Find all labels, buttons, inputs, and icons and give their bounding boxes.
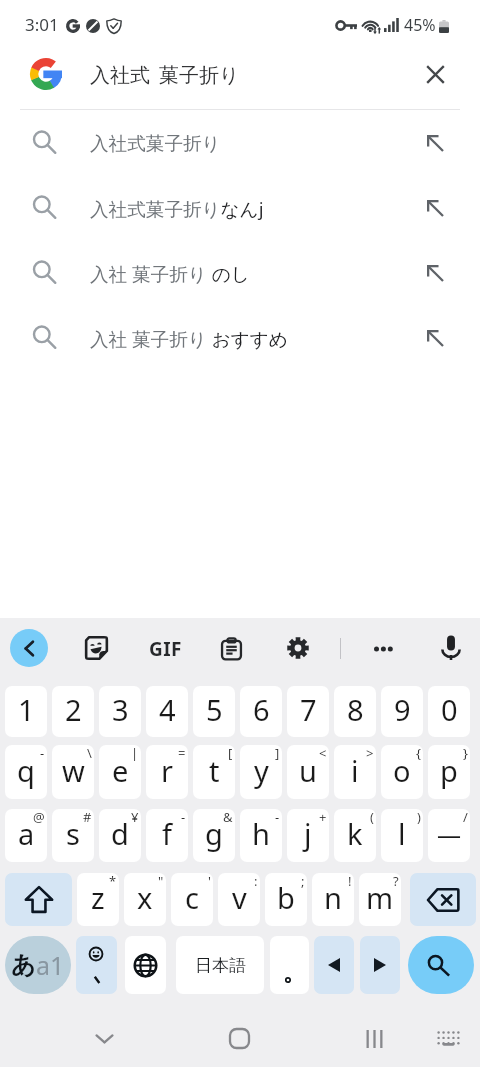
staticText: 45% bbox=[404, 14, 436, 36]
button[interactable]: GIF bbox=[149, 636, 182, 662]
button[interactable]: d bbox=[99, 809, 141, 862]
staticText: > bbox=[366, 745, 374, 762]
button[interactable]: Insert suggestion bbox=[413, 251, 457, 295]
button[interactable]: Back bbox=[10, 629, 48, 667]
staticText: w bbox=[62, 751, 85, 790]
button[interactable]: 6 bbox=[240, 686, 282, 737]
button[interactable]: u bbox=[287, 745, 329, 799]
staticText: — bbox=[437, 817, 461, 850]
button[interactable]: g bbox=[193, 809, 235, 862]
staticText: 1 bbox=[18, 690, 35, 729]
button[interactable]: Insert suggestion bbox=[413, 316, 457, 360]
button[interactable]: Shift bbox=[5, 873, 72, 926]
button[interactable]: Insert suggestion bbox=[413, 186, 457, 230]
button[interactable]: q bbox=[5, 745, 47, 799]
button[interactable]: あ bbox=[5, 936, 71, 994]
staticText: 7 bbox=[300, 690, 317, 729]
staticText: - bbox=[181, 809, 186, 826]
staticText: : bbox=[254, 873, 258, 890]
button[interactable]: Stickers bbox=[85, 636, 108, 660]
staticText: + bbox=[319, 809, 327, 826]
button[interactable]: 2 bbox=[52, 686, 94, 737]
staticText: 3:01 bbox=[25, 13, 59, 36]
button[interactable]: c bbox=[171, 873, 213, 926]
button[interactable]: Hide keyboard bbox=[84, 1018, 125, 1059]
staticText: - bbox=[275, 809, 280, 826]
button[interactable]: h bbox=[240, 809, 282, 862]
staticText: y bbox=[254, 751, 269, 790]
button[interactable]: w bbox=[52, 745, 94, 799]
button[interactable]: Clipboard bbox=[221, 638, 242, 660]
button[interactable]: j bbox=[287, 809, 329, 862]
button[interactable]: 9 bbox=[381, 686, 423, 737]
button[interactable]: 0 bbox=[428, 686, 470, 737]
button[interactable]: i bbox=[334, 745, 376, 799]
button[interactable]: 8 bbox=[334, 686, 376, 737]
staticText: あ bbox=[11, 950, 36, 980]
button[interactable]: Keyboard settings bbox=[287, 637, 309, 659]
button[interactable]: f bbox=[146, 809, 188, 862]
button[interactable]: 3 bbox=[99, 686, 141, 737]
staticText: " bbox=[158, 873, 164, 890]
button[interactable]: Switch keyboard bbox=[428, 1018, 469, 1059]
staticText: h bbox=[252, 814, 270, 853]
button[interactable]: 1 bbox=[5, 686, 47, 737]
button[interactable]: Voice input bbox=[442, 635, 460, 660]
button[interactable]: k bbox=[334, 809, 376, 862]
button[interactable]: Backspace bbox=[410, 873, 476, 926]
button[interactable]: l bbox=[381, 809, 423, 862]
button[interactable]: Change keyboard language bbox=[125, 936, 166, 994]
button[interactable]: e bbox=[99, 745, 141, 799]
staticText: ? bbox=[393, 873, 399, 890]
button[interactable]: Move cursor left bbox=[314, 936, 354, 994]
button[interactable]: y bbox=[240, 745, 282, 799]
button[interactable]: s bbox=[52, 809, 94, 862]
button[interactable] bbox=[270, 936, 309, 994]
button[interactable]: 7 bbox=[287, 686, 329, 737]
button[interactable]: Emoji bbox=[76, 936, 117, 994]
button[interactable]: p bbox=[428, 745, 470, 799]
button[interactable]: Home bbox=[219, 1018, 260, 1059]
staticText: ¥ bbox=[131, 809, 139, 826]
staticText: x bbox=[137, 878, 153, 917]
staticText: o bbox=[393, 751, 411, 790]
button[interactable]: m bbox=[359, 873, 401, 926]
button[interactable]: x bbox=[124, 873, 166, 926]
button[interactable]: z bbox=[77, 873, 119, 926]
button[interactable]: 入社式菓子折り bbox=[0, 110, 480, 175]
staticText: ( bbox=[370, 809, 374, 826]
staticText: n bbox=[324, 878, 342, 917]
staticText: u bbox=[299, 751, 317, 790]
button[interactable]: b bbox=[265, 873, 307, 926]
button[interactable]: 4 bbox=[146, 686, 188, 737]
button[interactable]: n bbox=[312, 873, 354, 926]
staticText: a bbox=[18, 814, 35, 853]
button[interactable]: r bbox=[146, 745, 188, 799]
button[interactable]: 日本語 bbox=[176, 936, 264, 994]
button[interactable]: Clear search bbox=[412, 54, 458, 100]
staticText: 入社式菓子折りなんj bbox=[90, 196, 264, 221]
button[interactable]: a bbox=[5, 809, 47, 862]
button[interactable]: Recent apps bbox=[354, 1018, 395, 1059]
button[interactable]: 入社式 bbox=[0, 45, 480, 109]
staticText: v bbox=[232, 878, 247, 917]
staticText: 入社 菓子折り おすすめ bbox=[90, 326, 288, 351]
staticText: r bbox=[161, 751, 173, 790]
button[interactable]: 5 bbox=[193, 686, 235, 737]
button[interactable]: Search bbox=[408, 936, 474, 994]
button[interactable]: 入社 菓子折り のし bbox=[0, 240, 480, 305]
button[interactable]: Insert suggestion bbox=[413, 121, 457, 165]
staticText: l bbox=[398, 814, 406, 853]
button[interactable]: — bbox=[428, 809, 470, 862]
staticText: & bbox=[223, 809, 233, 826]
button[interactable]: Move cursor right bbox=[360, 936, 400, 994]
button[interactable]: 入社 菓子折り おすすめ bbox=[0, 305, 480, 370]
button[interactable]: o bbox=[381, 745, 423, 799]
staticText: 6 bbox=[253, 690, 270, 729]
button[interactable]: More options bbox=[374, 638, 396, 660]
staticText: j bbox=[304, 814, 312, 853]
staticText: c bbox=[185, 878, 199, 917]
button[interactable]: v bbox=[218, 873, 260, 926]
button[interactable]: t bbox=[193, 745, 235, 799]
button[interactable]: 入社式菓子折りなんj bbox=[0, 175, 480, 240]
